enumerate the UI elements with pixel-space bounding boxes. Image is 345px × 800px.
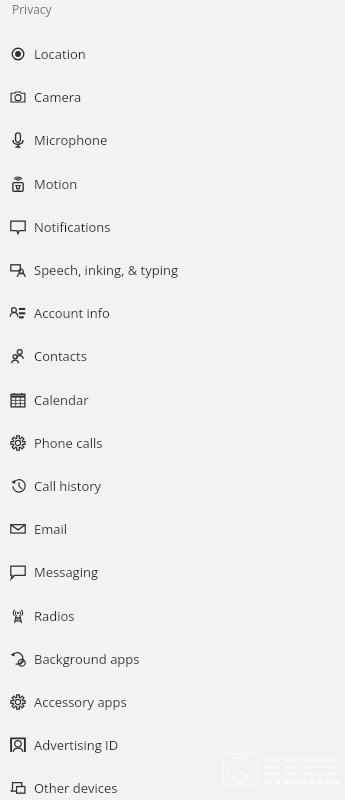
staticText: Calendar [34,391,89,409]
staticText: Accessory apps [34,693,127,711]
button[interactable]: Background apps [0,637,345,680]
staticText: Contacts [34,347,87,365]
button[interactable]: Messaging [0,550,345,593]
button[interactable]: Other devices [0,766,345,800]
button[interactable]: Phone calls [0,421,345,464]
staticText: Messaging [34,563,98,581]
button[interactable]: Call history [0,464,345,507]
button[interactable]: Location [0,32,345,75]
staticText: Phone calls [34,434,103,452]
staticText: Radios [34,607,75,625]
button[interactable]: Radios [0,594,345,637]
staticText: Other devices [34,779,118,797]
button[interactable]: Speech, inking, & typing [0,248,345,291]
staticText: Camera [34,88,82,106]
button[interactable]: Calendar [0,378,345,421]
staticText: Microphone [34,131,108,149]
button[interactable]: Motion [0,162,345,205]
staticText: Location [34,45,86,63]
button[interactable]: Account info [0,291,345,334]
staticText: Advertising ID [34,736,119,754]
staticText: Account info [34,304,110,322]
staticText: Privacy [12,1,52,17]
staticText: Notifications [34,218,111,236]
button[interactable]: Advertising ID [0,723,345,766]
button[interactable]: Email [0,507,345,550]
staticText: Motion [34,175,78,193]
button[interactable]: Notifications [0,205,345,248]
staticText: Speech, inking, & typing [34,261,179,279]
button[interactable]: Contacts [0,334,345,377]
button[interactable]: Accessory apps [0,680,345,723]
button[interactable]: Microphone [0,118,345,161]
button[interactable]: Camera [0,75,345,118]
staticText: Call history [34,477,102,495]
staticText: Email [34,520,68,538]
staticText: Background apps [34,650,140,668]
